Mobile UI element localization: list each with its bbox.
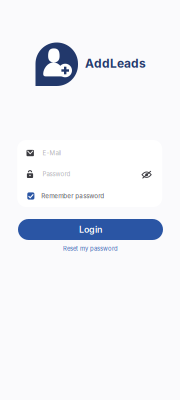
staticText: Password [42, 170, 70, 178]
button[interactable]: Remember password [27, 190, 152, 201]
staticText: E-Mail [42, 149, 60, 157]
button[interactable]: Reset my password [18, 243, 163, 254]
staticText: AddLeads [85, 56, 146, 71]
staticText: Login [79, 224, 102, 235]
staticText: Reset my password [63, 245, 118, 252]
button[interactable]: Show password [139, 166, 155, 182]
staticText: Remember password [41, 192, 104, 200]
button[interactable]: Login [18, 219, 163, 240]
